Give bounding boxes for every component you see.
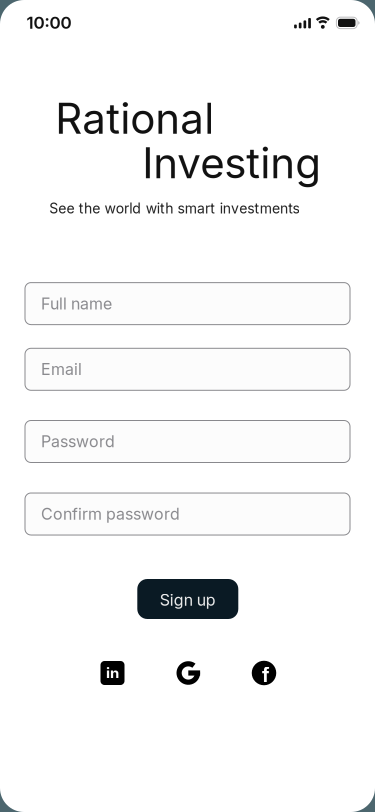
staticText: Confirm password: [41, 505, 180, 523]
button[interactable]: Confirm password: [25, 493, 350, 535]
button[interactable]: Full name: [25, 283, 350, 325]
staticText: 10:00: [26, 13, 71, 33]
button[interactable]: [176, 661, 200, 685]
staticText: f: [262, 664, 269, 686]
staticText: in: [106, 664, 119, 682]
staticText: Full name: [41, 294, 112, 313]
button[interactable]: in: [100, 661, 124, 685]
staticText: Password: [41, 432, 115, 451]
button[interactable]: Password: [25, 420, 350, 462]
staticText: Sign up: [160, 591, 216, 609]
staticText: Investing: [142, 138, 321, 188]
staticText: See the world with smart investments: [49, 200, 299, 216]
staticText: Rational: [55, 94, 214, 143]
staticText: Email: [41, 360, 82, 379]
button[interactable]: Email: [25, 348, 350, 390]
button[interactable]: f: [251, 660, 276, 685]
button[interactable]: Sign up: [137, 579, 238, 619]
